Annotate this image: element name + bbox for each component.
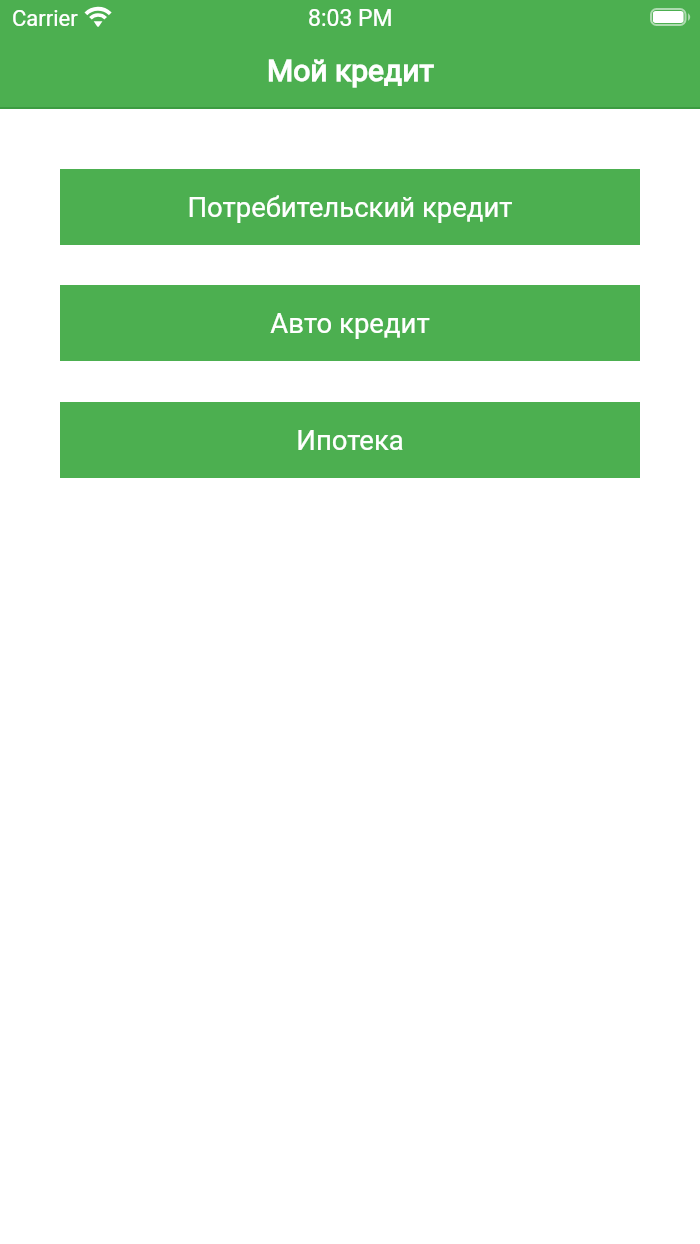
staticText: Авто кредит bbox=[270, 307, 430, 339]
button[interactable]: Потребительский кредит bbox=[60, 169, 640, 245]
staticText: Carrier bbox=[12, 6, 78, 32]
button[interactable]: Авто кредит bbox=[60, 285, 640, 361]
staticText: Потребительский кредит bbox=[187, 191, 513, 223]
staticText: Ипотека bbox=[296, 424, 404, 456]
other: Battery bbox=[650, 6, 691, 28]
staticText: Мой кредит bbox=[267, 53, 434, 88]
button[interactable]: Ипотека bbox=[60, 402, 640, 478]
other: Wi-Fi bbox=[85, 5, 112, 26]
staticText: 8:03 PM bbox=[308, 5, 393, 32]
